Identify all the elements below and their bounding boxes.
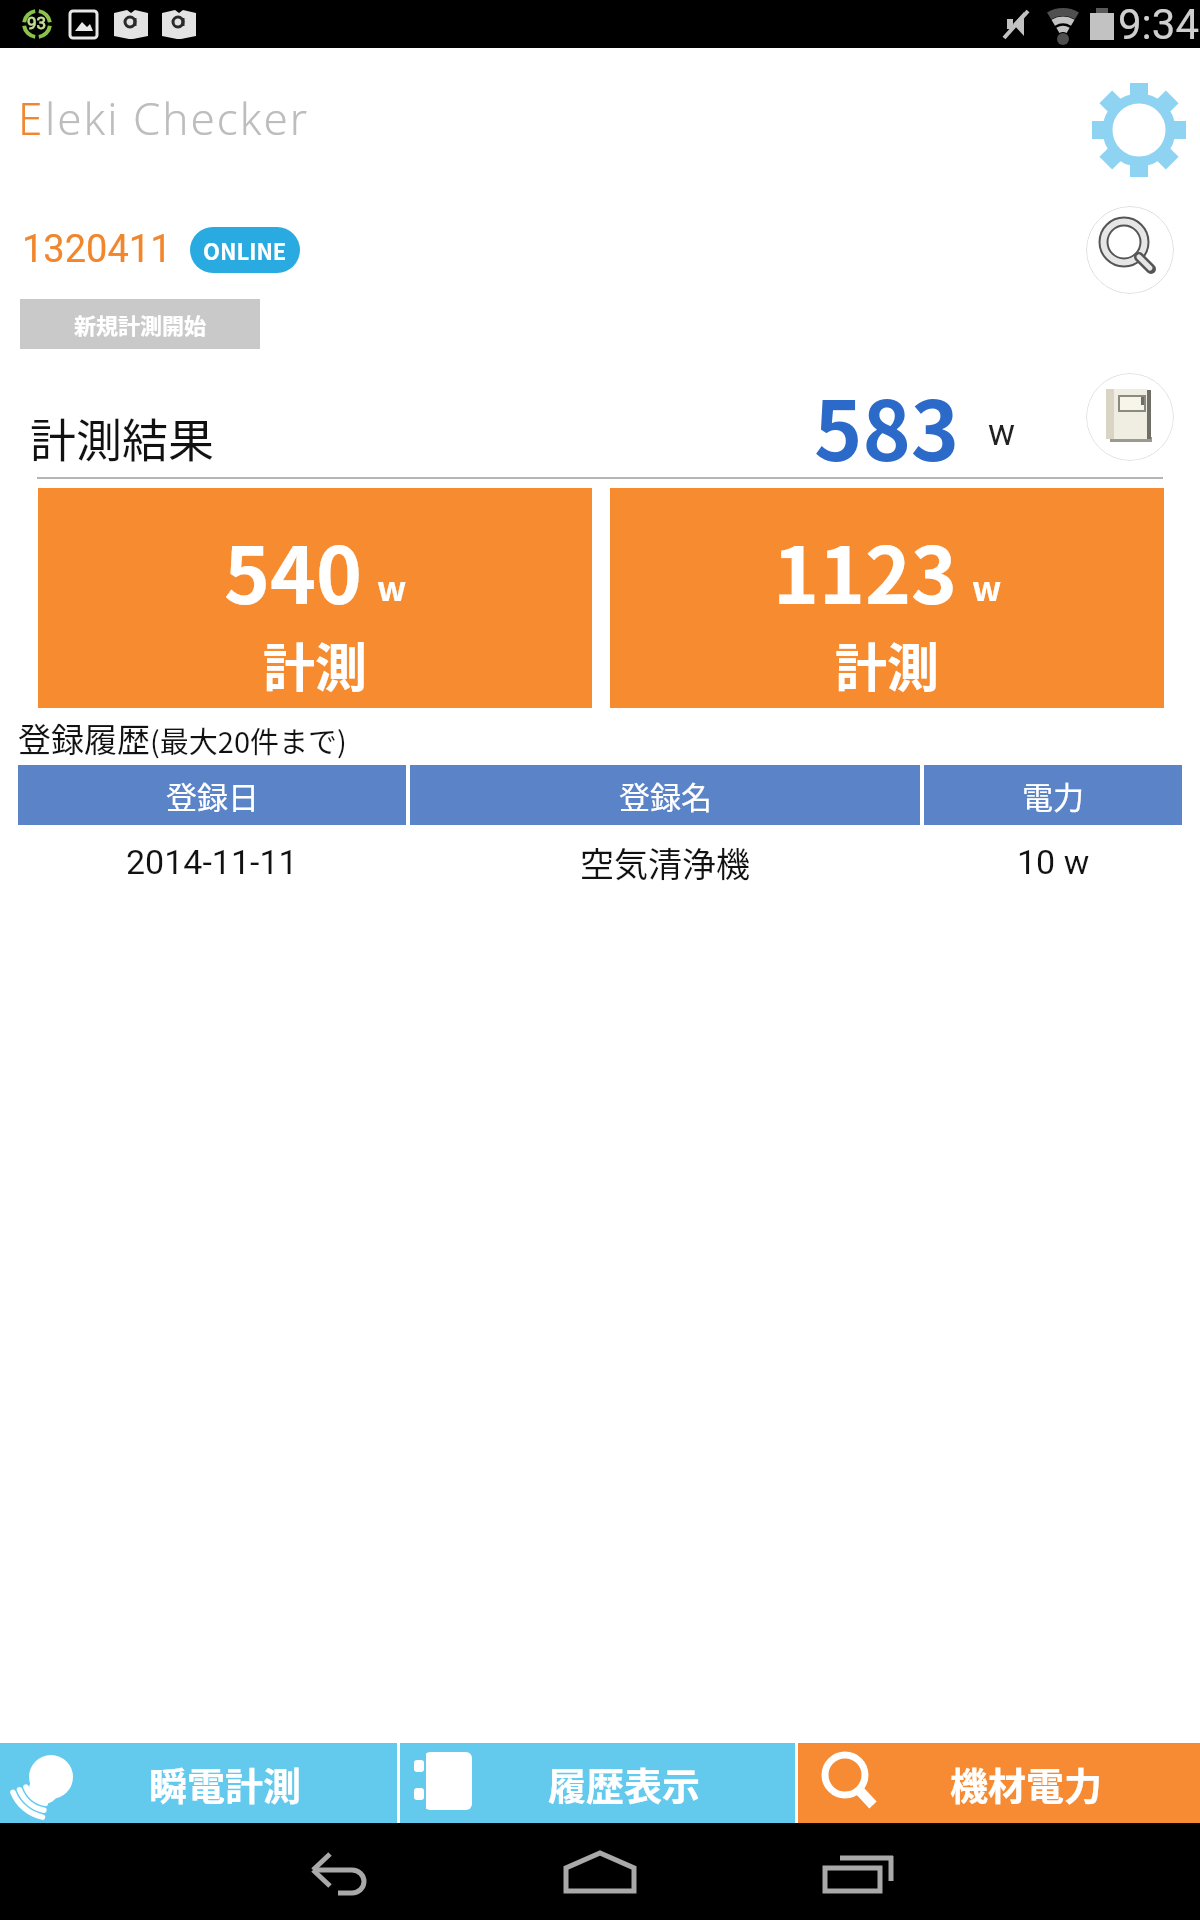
staticText: E xyxy=(18,88,45,148)
button[interactable] xyxy=(1086,206,1174,294)
staticText: 瞬電計測 xyxy=(149,1756,302,1811)
staticText: 登録名 xyxy=(619,773,712,818)
staticText: 10 w xyxy=(1017,842,1090,882)
button[interactable]: 新規計測開始 xyxy=(20,299,260,349)
staticText: 計測 xyxy=(263,627,368,702)
button[interactable]: 2014-11-11 xyxy=(18,825,1182,899)
staticText: 空気清浄機 xyxy=(580,838,750,887)
button[interactable]: 1123 xyxy=(610,488,1164,708)
button[interactable]: 540 xyxy=(38,488,592,708)
button[interactable]: ONLINE xyxy=(190,227,300,273)
staticText: 2014-11-11 xyxy=(126,842,298,882)
staticText: 登録日 xyxy=(166,773,259,818)
staticText: w xyxy=(988,412,1016,454)
button[interactable]: 履歴表示 xyxy=(400,1743,795,1823)
staticText: 計測 xyxy=(835,627,940,702)
staticText: w xyxy=(377,562,407,611)
staticText: 1320411 xyxy=(22,227,172,272)
staticText: 583 xyxy=(814,366,960,466)
button[interactable] xyxy=(1089,79,1189,179)
staticText: 計測結果 xyxy=(30,404,214,471)
staticText: 登録履歴 xyxy=(18,714,150,762)
staticText: leki Checker xyxy=(45,88,310,148)
staticText: 機材電力 xyxy=(950,1756,1103,1811)
staticText: 電力 xyxy=(1022,773,1084,818)
staticText: w xyxy=(972,562,1002,611)
staticText: 9:34 xyxy=(1118,0,1199,48)
button[interactable]: 瞬電計測 xyxy=(0,1743,397,1823)
staticText: 新規計測開始 xyxy=(74,308,207,340)
staticText: 93 xyxy=(27,13,47,33)
staticText: ONLINE xyxy=(203,234,287,266)
button[interactable]: 機材電力 xyxy=(798,1743,1200,1823)
staticText: 履歴表示 xyxy=(548,1756,701,1811)
staticText: (最大20件まで) xyxy=(150,719,347,761)
staticText: 1123 xyxy=(773,514,958,627)
staticText: 540 xyxy=(224,514,363,627)
button[interactable] xyxy=(1086,373,1174,461)
